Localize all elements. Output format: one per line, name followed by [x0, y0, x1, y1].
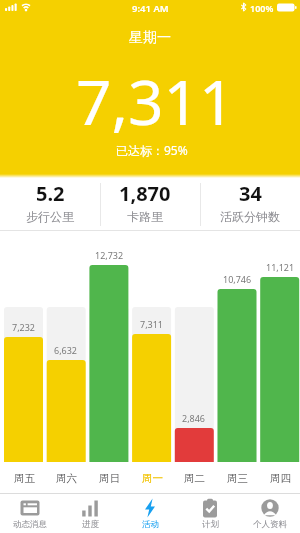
staticText: 周二 — [184, 472, 205, 485]
staticText: 7,311 — [140, 318, 164, 330]
staticText: 9:41 AM — [132, 2, 169, 15]
button[interactable]: 34 — [200, 178, 300, 230]
staticText: 进度 — [82, 519, 99, 530]
button[interactable]: 进度 — [60, 494, 120, 533]
button[interactable] — [218, 240, 257, 486]
staticText: 卡路里 — [127, 209, 163, 224]
button[interactable] — [260, 240, 299, 486]
button[interactable] — [4, 240, 43, 486]
staticText: 已达标：95% — [116, 142, 188, 158]
button[interactable] — [132, 240, 171, 486]
staticText: 11,121 — [266, 261, 295, 273]
staticText: 12,732 — [95, 249, 124, 261]
button[interactable] — [89, 240, 128, 486]
staticText: 周日 — [99, 472, 120, 485]
staticText: 2,846 — [182, 412, 206, 424]
staticText: 34 — [239, 180, 262, 207]
button[interactable]: 5.2 — [0, 178, 100, 230]
staticText: 周四 — [270, 472, 291, 485]
staticText: 计划 — [202, 519, 219, 530]
staticText: 6,632 — [54, 344, 78, 356]
staticText: 周一 — [142, 472, 163, 485]
staticText: 活跃分钟数 — [220, 209, 280, 224]
button[interactable]: 个人资料 — [240, 494, 300, 533]
staticText: 周三 — [227, 472, 248, 485]
staticText: 活动 — [142, 519, 159, 530]
staticText: 周六 — [56, 472, 77, 485]
staticText: 10,746 — [223, 273, 252, 285]
staticText: 7,232 — [12, 321, 36, 333]
staticText: 星期一 — [129, 29, 171, 47]
staticText: 个人资料 — [253, 519, 287, 530]
button[interactable] — [175, 240, 214, 486]
staticText: 5.2 — [36, 180, 65, 207]
staticText: 步行公里 — [26, 209, 74, 224]
button[interactable]: 计划 — [180, 494, 240, 533]
staticText: 动态消息 — [13, 519, 47, 530]
staticText: 7,311 — [76, 59, 235, 139]
staticText: 100% — [250, 2, 274, 14]
staticText: 周五 — [14, 472, 35, 485]
button[interactable]: 动态消息 — [0, 494, 60, 533]
button[interactable]: 1,870 — [95, 178, 195, 230]
staticText: 1,870 — [119, 180, 171, 207]
button[interactable]: 活动 — [120, 494, 180, 533]
button[interactable] — [47, 240, 86, 486]
